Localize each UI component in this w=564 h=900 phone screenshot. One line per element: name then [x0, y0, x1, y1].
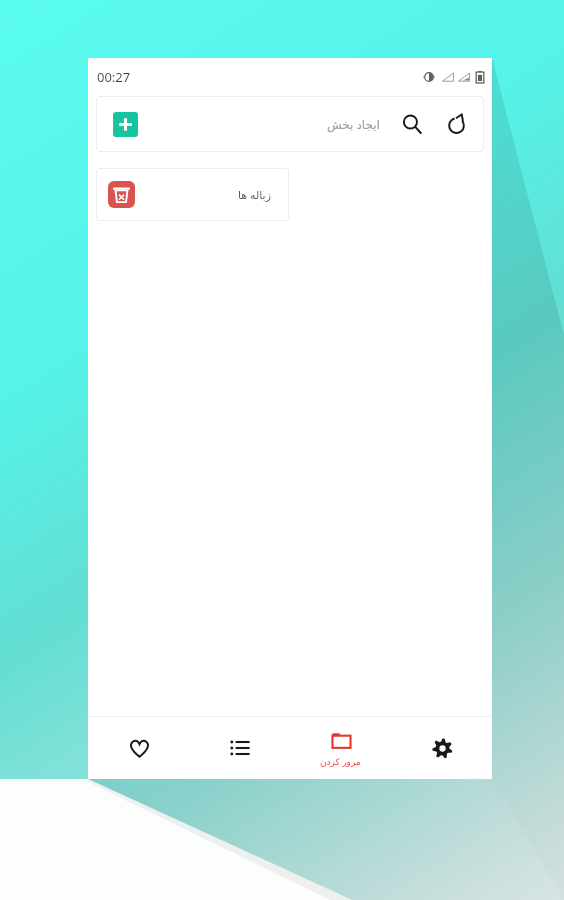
- staticText: 00:27: [97, 68, 131, 86]
- button[interactable]: List: [189, 717, 290, 779]
- button[interactable]: Add section: [113, 112, 138, 137]
- button[interactable]: زباله ها: [96, 168, 289, 221]
- button[interactable]: Search: [396, 108, 428, 140]
- button[interactable]: Favorites: [88, 717, 189, 779]
- button[interactable]: ایجاد بخش: [323, 112, 384, 136]
- button[interactable]: مرور کردن: [290, 717, 391, 779]
- button[interactable]: Settings: [391, 717, 492, 779]
- staticText: زباله ها: [238, 187, 271, 202]
- staticText: مرور کردن: [320, 755, 361, 767]
- button[interactable]: Refresh: [440, 108, 472, 140]
